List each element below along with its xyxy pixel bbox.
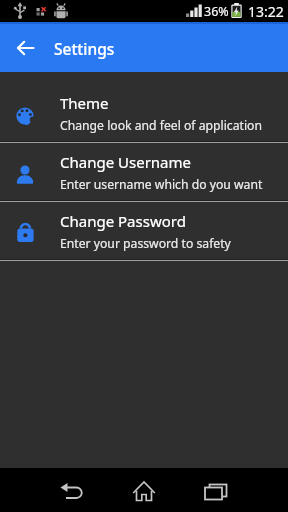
staticText: Theme: [60, 93, 109, 113]
button[interactable]: Change Password: [0, 202, 288, 261]
button[interactable]: Theme: [0, 84, 288, 143]
staticText: 36%: [204, 3, 229, 20]
staticText: Change Username: [60, 152, 191, 172]
button[interactable]: [96, 468, 192, 512]
staticText: Change look and feel of application: [60, 117, 262, 134]
staticText: Change Password: [60, 211, 186, 231]
staticText: Settings: [54, 38, 115, 59]
staticText: 13:22: [248, 2, 284, 21]
button[interactable]: [0, 468, 96, 512]
button[interactable]: [10, 33, 40, 63]
staticText: Enter username which do you want: [60, 176, 263, 193]
button[interactable]: [192, 468, 288, 512]
button[interactable]: Change Username: [0, 143, 288, 202]
staticText: Enter your password to safety: [60, 235, 231, 252]
